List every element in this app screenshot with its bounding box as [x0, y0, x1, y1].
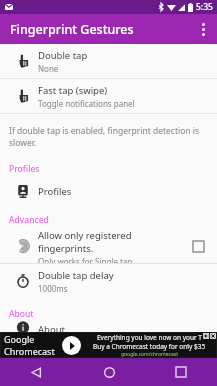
staticText: Chromecast — [4, 345, 55, 357]
button[interactable]: Double tap — [0, 44, 217, 78]
button[interactable]: Back — [0, 358, 73, 386]
staticText: About — [38, 323, 65, 332]
staticText: Allow only registered fingerprints. — [38, 229, 183, 255]
staticText: Double tap — [38, 49, 88, 62]
staticText: About — [9, 308, 34, 320]
staticText: Advanced — [9, 214, 49, 226]
button[interactable]: About — [0, 323, 217, 332]
staticText: Double tap delay — [38, 269, 114, 282]
button[interactable]: Allow only registered fingerprints check… — [187, 235, 209, 257]
staticText: Google — [4, 333, 35, 345]
staticText: Fingerprint Gestures — [10, 21, 134, 38]
button[interactable]: Allow only registered fingerprints. — [0, 229, 217, 263]
staticText: Profiles — [9, 163, 40, 175]
staticText: google.com/chromecast — [121, 351, 178, 358]
button[interactable]: Profiles — [0, 178, 217, 204]
staticText: None — [38, 63, 59, 74]
button[interactable]: Fast tap (swipe) — [0, 79, 217, 113]
staticText: Buy a Chromecast today for only $35 — [93, 342, 206, 351]
staticText: 1000ms — [38, 283, 68, 294]
button[interactable]: Home — [73, 358, 145, 386]
staticText: Toggle notifications panel — [38, 98, 135, 109]
staticText: If double tap is enabled, fingerprint de… — [9, 125, 209, 149]
button[interactable]: More options — [189, 14, 217, 44]
staticText: Everything you love now on your T — [97, 333, 202, 342]
button[interactable]: Double tap delay — [0, 264, 217, 298]
button[interactable]: Recent apps — [145, 358, 217, 386]
staticText: Profiles — [38, 185, 72, 198]
button[interactable]: Google — [0, 332, 217, 358]
staticText: 5:35 — [196, 1, 213, 13]
staticText: Only works for Single tap. — [38, 256, 135, 263]
staticText: Fast tap (swipe) — [38, 84, 108, 97]
